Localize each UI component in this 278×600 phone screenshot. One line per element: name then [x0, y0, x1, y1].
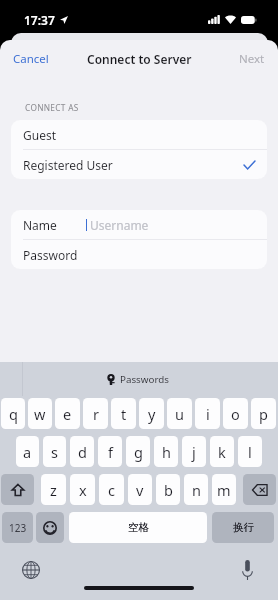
button[interactable]: Shift	[1, 474, 34, 505]
staticText: r	[93, 404, 99, 424]
staticText: 17:37	[24, 12, 55, 28]
staticText: n	[192, 480, 201, 500]
staticText: x	[79, 480, 87, 500]
button[interactable]: Name	[11, 210, 267, 239]
button[interactable]: 空格	[69, 512, 207, 543]
staticText: c	[108, 480, 115, 500]
button[interactable]: u	[167, 398, 192, 429]
staticText: g	[134, 442, 143, 462]
staticText: d	[78, 442, 87, 462]
button[interactable]: o	[223, 398, 248, 429]
staticText: Password	[23, 247, 78, 263]
button[interactable]: g	[126, 436, 150, 467]
button[interactable]: Registered User	[11, 150, 267, 179]
button[interactable]: k	[210, 436, 234, 467]
staticText: u	[175, 404, 184, 424]
button[interactable]: f	[98, 436, 122, 467]
button[interactable]: Emoji	[36, 512, 64, 543]
staticText: h	[162, 442, 171, 462]
button[interactable]: s	[43, 436, 66, 467]
staticText: t	[121, 404, 127, 424]
button[interactable]: Next	[226, 42, 278, 76]
button[interactable]: z	[41, 474, 66, 505]
button[interactable]: d	[70, 436, 94, 467]
button[interactable]: Dictate	[233, 556, 261, 584]
staticText: v	[136, 480, 144, 500]
staticText: f	[108, 442, 113, 462]
staticText: q	[9, 404, 18, 424]
button[interactable]: 换行	[212, 512, 274, 543]
staticText: Cancel	[13, 51, 49, 67]
button[interactable]: m	[212, 474, 236, 505]
button[interactable]: Cancel	[0, 42, 62, 76]
staticText: Next	[239, 51, 265, 67]
button[interactable]: c	[99, 474, 124, 505]
staticText: l	[248, 442, 252, 462]
button[interactable]: 123	[2, 512, 33, 543]
staticText: CONNECT AS	[25, 102, 79, 113]
button[interactable]: x	[70, 474, 95, 505]
staticText: j	[192, 442, 196, 462]
button[interactable]: Passwords	[107, 373, 170, 386]
staticText: Guest	[23, 127, 57, 143]
staticText: 空格	[128, 521, 149, 534]
button[interactable]: Password	[11, 240, 267, 269]
staticText: y	[148, 404, 156, 424]
staticText: m	[217, 480, 231, 500]
button[interactable]: Backspace	[243, 474, 276, 505]
staticText: Connect to Server	[87, 51, 192, 67]
staticText: s	[51, 442, 58, 462]
staticText: Passwords	[120, 373, 170, 386]
staticText: a	[23, 442, 32, 462]
staticText: p	[259, 404, 268, 424]
button[interactable]: v	[128, 474, 152, 505]
staticText: k	[218, 442, 226, 462]
staticText: o	[231, 404, 240, 424]
staticText: e	[63, 404, 72, 424]
button[interactable]: j	[182, 436, 206, 467]
staticText: z	[50, 480, 57, 500]
staticText: 换行	[233, 521, 254, 534]
staticText: 换行	[233, 521, 254, 534]
button[interactable]: h	[154, 436, 178, 467]
staticText: b	[164, 480, 173, 500]
button[interactable]: p	[251, 398, 276, 429]
button[interactable]: e	[55, 398, 80, 429]
button[interactable]: n	[184, 474, 208, 505]
button[interactable]: t	[111, 398, 136, 429]
button[interactable]: y	[139, 398, 164, 429]
button[interactable]: b	[156, 474, 180, 505]
button[interactable]: q	[1, 398, 25, 429]
staticText: 空格	[128, 521, 149, 534]
button[interactable]: r	[83, 398, 108, 429]
staticText: w	[34, 404, 46, 424]
staticText: Name	[23, 217, 57, 233]
button[interactable]: i	[195, 398, 220, 429]
staticText: 123	[9, 521, 27, 535]
button[interactable]: w	[28, 398, 52, 429]
staticText: Username	[90, 217, 149, 233]
button[interactable]: l	[238, 436, 262, 467]
button[interactable]: Guest	[11, 120, 267, 149]
button[interactable]: a	[16, 436, 39, 467]
staticText: Registered User	[23, 157, 113, 173]
staticText: i	[206, 404, 210, 424]
button[interactable]: Change keyboard	[17, 556, 45, 584]
